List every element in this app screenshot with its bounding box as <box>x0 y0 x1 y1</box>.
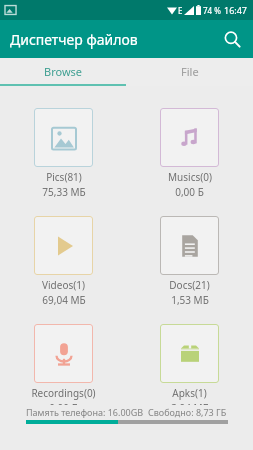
button[interactable]: Apks(1) <box>158 323 221 406</box>
button[interactable]: Recordings(0) <box>29 323 98 406</box>
staticText: 0,00 Б <box>175 185 204 199</box>
staticText: Память телефона: 16.00GB <box>26 406 144 418</box>
button[interactable]: Musics(0) <box>158 107 221 200</box>
staticText: File <box>181 64 199 79</box>
staticText: 16:47 <box>224 4 248 16</box>
button[interactable]: Pics(81) <box>32 107 95 200</box>
button[interactable]: Browse <box>0 58 126 84</box>
button[interactable]: File <box>126 58 253 84</box>
staticText: Recordings(0) <box>31 386 96 400</box>
staticText: 69,04 МБ <box>42 293 86 307</box>
staticText: 74 % <box>203 5 221 16</box>
button[interactable]: Search <box>215 22 249 56</box>
button[interactable]: Videos(1) <box>32 215 95 308</box>
staticText: Docs(21) <box>169 278 210 292</box>
staticText: 0,00 Б <box>49 401 78 405</box>
staticText: Musics(0) <box>168 170 212 184</box>
button[interactable]: Docs(21) <box>158 215 221 308</box>
staticText: Videos(1) <box>42 278 85 292</box>
staticText: Pics(81) <box>46 170 82 184</box>
staticText: Browse <box>44 64 83 79</box>
staticText: E <box>178 5 183 16</box>
staticText: 3,94 МБ <box>171 401 209 405</box>
staticText: Диспетчер файлов <box>10 30 138 49</box>
staticText: 1,53 МБ <box>171 293 209 307</box>
staticText: Apks(1) <box>172 386 207 400</box>
staticText: 75,33 МБ <box>42 185 86 199</box>
staticText: Свободно: 8,73 ГБ <box>148 406 227 418</box>
